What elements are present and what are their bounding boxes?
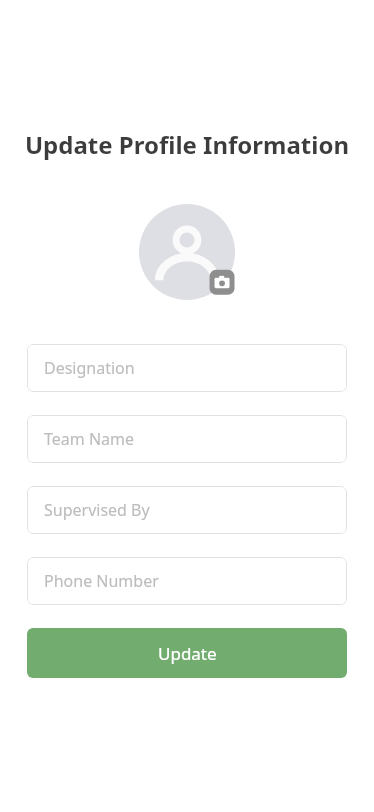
- button[interactable]: Change profile photo: [139, 204, 235, 300]
- staticText: Update Profile Information: [0, 128, 374, 161]
- staticText: Designation: [44, 357, 135, 379]
- staticText: Supervised By: [44, 499, 150, 521]
- staticText: Team Name: [44, 428, 135, 450]
- button[interactable]: Team Name: [27, 415, 347, 463]
- staticText: Update: [158, 642, 217, 665]
- button[interactable]: Supervised By: [27, 486, 347, 534]
- button[interactable]: Designation: [27, 344, 347, 392]
- staticText: Phone Number: [44, 570, 159, 592]
- button[interactable]: Update: [27, 628, 347, 678]
- button[interactable]: Phone Number: [27, 557, 347, 605]
